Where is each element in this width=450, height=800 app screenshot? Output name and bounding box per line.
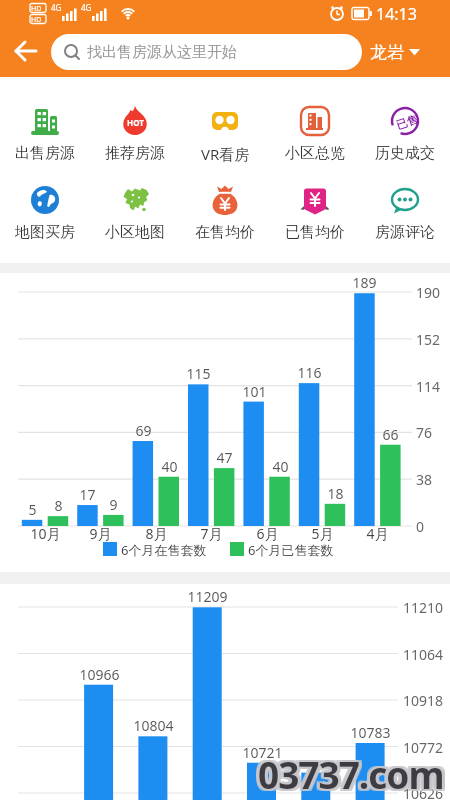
button[interactable]: 已售均价 xyxy=(270,182,360,254)
staticText: 4月 xyxy=(366,524,389,543)
staticText: 7月 xyxy=(200,524,223,543)
staticText: VR看房 xyxy=(201,144,250,164)
staticText: 11209 xyxy=(187,587,228,606)
staticText: 115 xyxy=(186,364,211,383)
staticText: 101 xyxy=(242,382,267,401)
staticText: 10721 xyxy=(242,743,283,762)
staticText: 6个月在售套数 xyxy=(121,541,207,559)
staticText: 116 xyxy=(297,363,322,382)
button[interactable]: VR看房 xyxy=(180,103,270,175)
staticText: 40 xyxy=(161,457,178,476)
staticText: 189 xyxy=(352,273,377,292)
button[interactable]: 龙岩 xyxy=(370,38,434,66)
staticText: 已售均价 xyxy=(285,223,345,242)
staticText: 11064 xyxy=(403,645,444,664)
staticText: 10626 xyxy=(403,784,444,800)
staticText: 9月 xyxy=(89,524,112,543)
staticText: 房源评论 xyxy=(375,223,435,242)
button[interactable]: 房源评论 xyxy=(360,182,450,254)
button[interactable] xyxy=(8,36,42,66)
staticText: 10918 xyxy=(403,691,444,710)
staticText: 已售 xyxy=(394,112,420,132)
staticText: 03737.com xyxy=(258,747,444,793)
staticText: 03737.com xyxy=(261,747,447,793)
staticText: 9 xyxy=(109,495,118,514)
staticText: 14:13 xyxy=(376,3,417,25)
button[interactable]: 地图买房 xyxy=(0,182,90,254)
staticText: 找出售房源从这里开始 xyxy=(87,43,237,62)
staticText: 4G xyxy=(81,2,92,13)
staticText: 03737.com xyxy=(261,751,447,797)
staticText: 40 xyxy=(272,457,289,476)
staticText: 152 xyxy=(416,330,441,349)
staticText: 历史成交 xyxy=(375,144,435,163)
staticText: 5月 xyxy=(311,524,334,543)
staticText: 6月 xyxy=(256,524,279,543)
staticText: HD xyxy=(31,4,42,14)
staticText: 10804 xyxy=(133,716,174,735)
staticText: 03737.com xyxy=(261,749,447,795)
staticText: 小区总览 xyxy=(285,144,345,163)
staticText: 03737.com xyxy=(255,749,441,795)
staticText: 17 xyxy=(79,485,96,504)
staticText: 11210 xyxy=(403,598,444,617)
staticText: 03737.com xyxy=(255,751,441,797)
staticText: 推荐房源 xyxy=(105,144,165,163)
button[interactable]: 历史成交 xyxy=(360,103,450,175)
staticText: 在售均价 xyxy=(195,223,255,242)
staticText: 69 xyxy=(135,421,152,440)
button[interactable]: 小区地图 xyxy=(90,182,180,254)
staticText: 4G xyxy=(51,2,62,13)
button[interactable]: 找出售房源从这里开始 xyxy=(51,34,362,70)
staticText: 地图买房 xyxy=(15,223,75,242)
staticText: 5 xyxy=(28,500,37,519)
button[interactable]: 推荐房源 xyxy=(90,103,180,175)
button[interactable]: 在售均价 xyxy=(180,182,270,254)
staticText: 出售房源 xyxy=(15,144,75,163)
staticText: 10783 xyxy=(350,723,391,742)
staticText: 小区地图 xyxy=(105,223,165,242)
staticText: 8 xyxy=(54,496,63,515)
staticText: 47 xyxy=(216,448,233,467)
staticText: 10772 xyxy=(403,738,444,757)
staticText: HD xyxy=(31,15,42,25)
staticText: 114 xyxy=(416,377,441,396)
staticText: 6个月已售套数 xyxy=(248,541,334,559)
staticText: 10月 xyxy=(30,524,61,543)
staticText: HOT xyxy=(127,117,144,128)
staticText: 8月 xyxy=(145,524,168,543)
staticText: 190 xyxy=(416,283,441,302)
staticText: 0 xyxy=(416,517,425,536)
button[interactable]: 出售房源 xyxy=(0,103,90,175)
button[interactable]: 小区总览 xyxy=(270,103,360,175)
staticText: 76 xyxy=(416,423,433,442)
staticText: 03737.com xyxy=(258,751,444,797)
staticText: 38 xyxy=(416,470,433,489)
staticText: 03737.com xyxy=(258,749,444,795)
staticText: 66 xyxy=(382,425,399,444)
staticText: 18 xyxy=(327,484,344,503)
staticText: 龙岩 xyxy=(370,42,404,63)
staticText: 10966 xyxy=(79,665,120,684)
staticText: 03737.com xyxy=(255,747,441,793)
